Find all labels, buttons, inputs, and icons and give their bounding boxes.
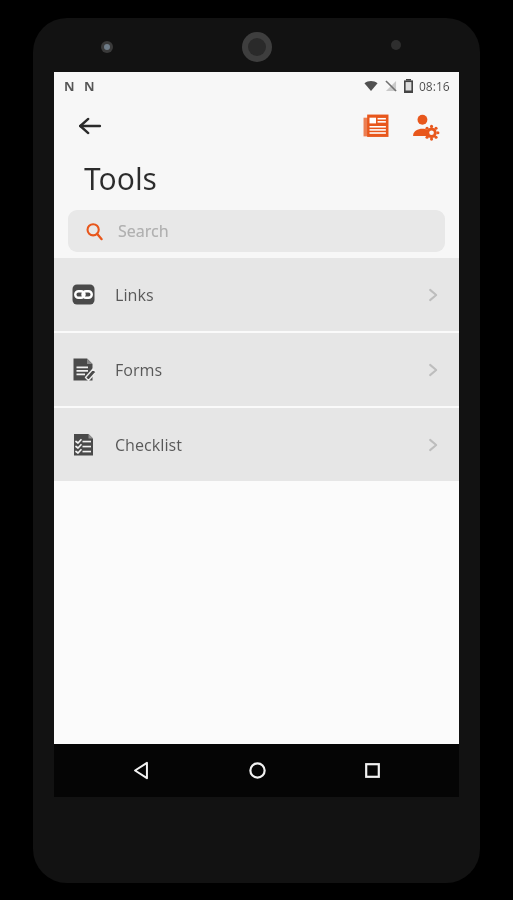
button[interactable]: Search — [68, 210, 445, 252]
staticText: Checklist — [115, 434, 182, 456]
staticText: Tools — [84, 158, 157, 199]
button[interactable]: Forms — [54, 333, 459, 406]
staticText: N — [64, 77, 75, 95]
staticText: Search — [118, 220, 169, 242]
staticText: Forms — [115, 359, 163, 381]
button[interactable]: Links — [54, 258, 459, 331]
button[interactable]: News — [355, 105, 397, 147]
button[interactable]: Back — [113, 744, 169, 797]
button[interactable]: Recent apps — [344, 744, 400, 797]
button[interactable]: Account settings — [403, 105, 445, 147]
button[interactable]: Checklist — [54, 408, 459, 481]
button[interactable]: Home — [229, 744, 285, 797]
staticText: N — [84, 77, 95, 95]
button[interactable]: Back — [68, 104, 112, 148]
staticText: Links — [115, 284, 154, 306]
staticText: 08:16 — [419, 78, 450, 94]
